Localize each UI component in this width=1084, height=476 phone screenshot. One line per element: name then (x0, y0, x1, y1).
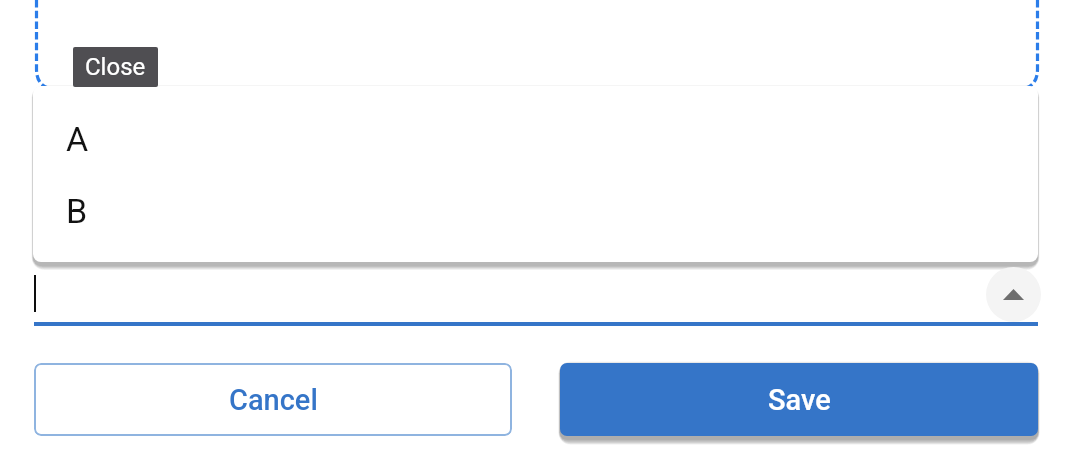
button[interactable]: B (33, 175, 1038, 247)
button[interactable]: A (33, 103, 1038, 175)
staticText: Close (85, 53, 146, 81)
button[interactable]: Collapse dropdown (986, 267, 1041, 322)
button[interactable]: Close (73, 47, 158, 87)
staticText: B (66, 191, 88, 231)
staticText: Save (768, 383, 831, 417)
staticText: Cancel (229, 383, 318, 417)
button[interactable]: Text field (34, 266, 1038, 326)
button[interactable]: Cancel (34, 363, 512, 436)
button[interactable]: Save (560, 363, 1038, 436)
staticText: A (66, 119, 89, 159)
